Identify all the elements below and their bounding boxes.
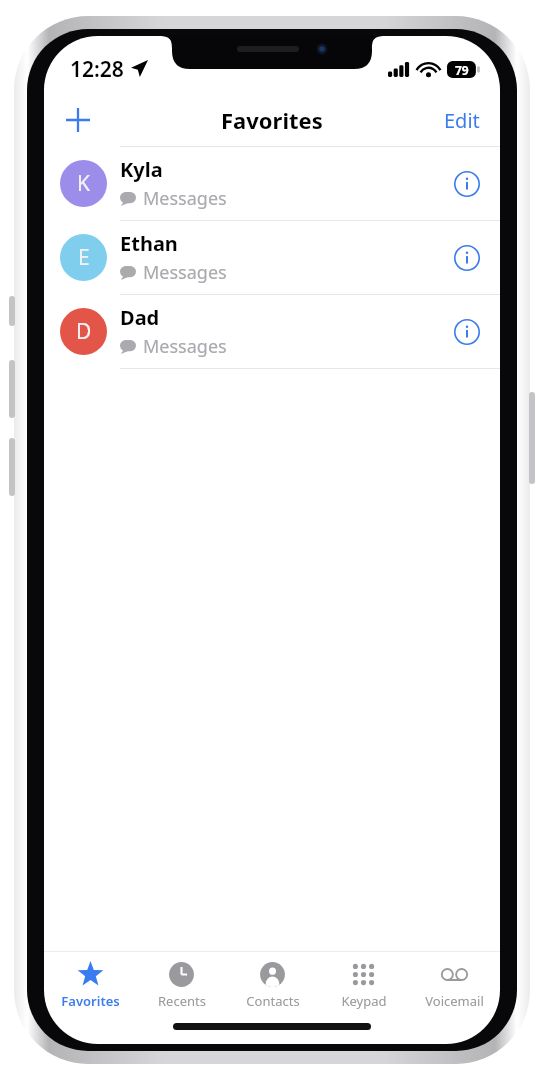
button[interactable]: Info about Dad [444, 309, 490, 355]
staticText: K [77, 169, 90, 198]
staticText: Kyla [120, 156, 163, 183]
button[interactable]: Add favorite [54, 96, 102, 144]
staticText: Messages [143, 260, 227, 285]
staticText: Favorites [61, 992, 120, 1010]
button[interactable]: Info about Kyla [444, 161, 490, 207]
button[interactable]: Favorites [44, 952, 136, 1020]
staticText: Favorites [221, 105, 323, 135]
button[interactable]: Edit [438, 99, 486, 142]
button[interactable]: D [44, 295, 500, 368]
staticText: Contacts [246, 992, 300, 1010]
staticText: Messages [143, 334, 227, 359]
staticText: Edit [444, 107, 480, 134]
staticText: Ethan [120, 230, 178, 257]
button[interactable]: K [44, 147, 500, 220]
button[interactable]: Keypad [318, 952, 409, 1020]
button[interactable]: E [44, 221, 500, 294]
button[interactable]: Contacts [227, 952, 318, 1020]
button[interactable]: Voicemail [409, 952, 500, 1020]
staticText: Keypad [341, 992, 387, 1010]
staticText: E [78, 243, 90, 272]
staticText: Messages [143, 186, 227, 211]
staticText: D [76, 317, 92, 346]
staticText: 79 [455, 62, 469, 78]
button[interactable]: Info about Ethan [444, 235, 490, 281]
staticText: Recents [158, 992, 206, 1010]
staticText: 12:28 [70, 55, 124, 84]
staticText: Dad [120, 304, 160, 331]
staticText: Voicemail [425, 992, 484, 1010]
button[interactable]: Recents [136, 952, 227, 1020]
